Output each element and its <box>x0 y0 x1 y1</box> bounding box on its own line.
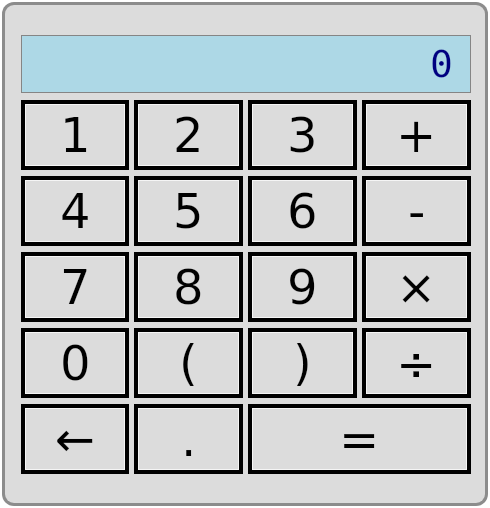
staticText: 8 <box>173 259 204 315</box>
button[interactable]: 7 <box>26 257 124 317</box>
staticText: 1 <box>60 107 91 163</box>
staticText: ÷ <box>396 335 437 391</box>
staticText: 0 <box>60 335 91 391</box>
staticText: . <box>181 411 197 467</box>
button[interactable]: 9 <box>253 257 352 317</box>
button[interactable]: - <box>367 181 466 241</box>
staticText: 5 <box>173 183 204 239</box>
button[interactable]: ← <box>26 409 124 469</box>
staticText: ( <box>179 335 198 391</box>
staticText: + <box>396 107 437 163</box>
button[interactable]: 0 <box>22 36 470 92</box>
staticText: 7 <box>60 259 91 315</box>
button[interactable]: 8 <box>139 257 238 317</box>
button[interactable]: × <box>367 257 466 317</box>
staticText: 2 <box>173 107 204 163</box>
button[interactable]: 1 <box>26 105 124 165</box>
button[interactable]: 4 <box>26 181 124 241</box>
button[interactable]: 0 <box>26 333 124 393</box>
staticText: ) <box>293 335 312 391</box>
button[interactable]: + <box>367 105 466 165</box>
staticText: 3 <box>287 107 318 163</box>
staticText: 0 <box>430 42 453 86</box>
button[interactable]: = <box>253 409 466 469</box>
button[interactable]: . <box>139 409 238 469</box>
staticText: 9 <box>287 259 318 315</box>
staticText: 6 <box>287 183 318 239</box>
staticText: 4 <box>60 183 91 239</box>
button[interactable]: 5 <box>139 181 238 241</box>
button[interactable]: ) <box>253 333 352 393</box>
staticText: - <box>408 183 426 239</box>
button[interactable]: 2 <box>139 105 238 165</box>
staticText: ← <box>55 411 96 467</box>
button[interactable]: ( <box>139 333 238 393</box>
staticText: × <box>396 259 437 315</box>
staticText: = <box>339 411 380 467</box>
button[interactable]: 6 <box>253 181 352 241</box>
button[interactable]: 3 <box>253 105 352 165</box>
button[interactable]: ÷ <box>367 333 466 393</box>
